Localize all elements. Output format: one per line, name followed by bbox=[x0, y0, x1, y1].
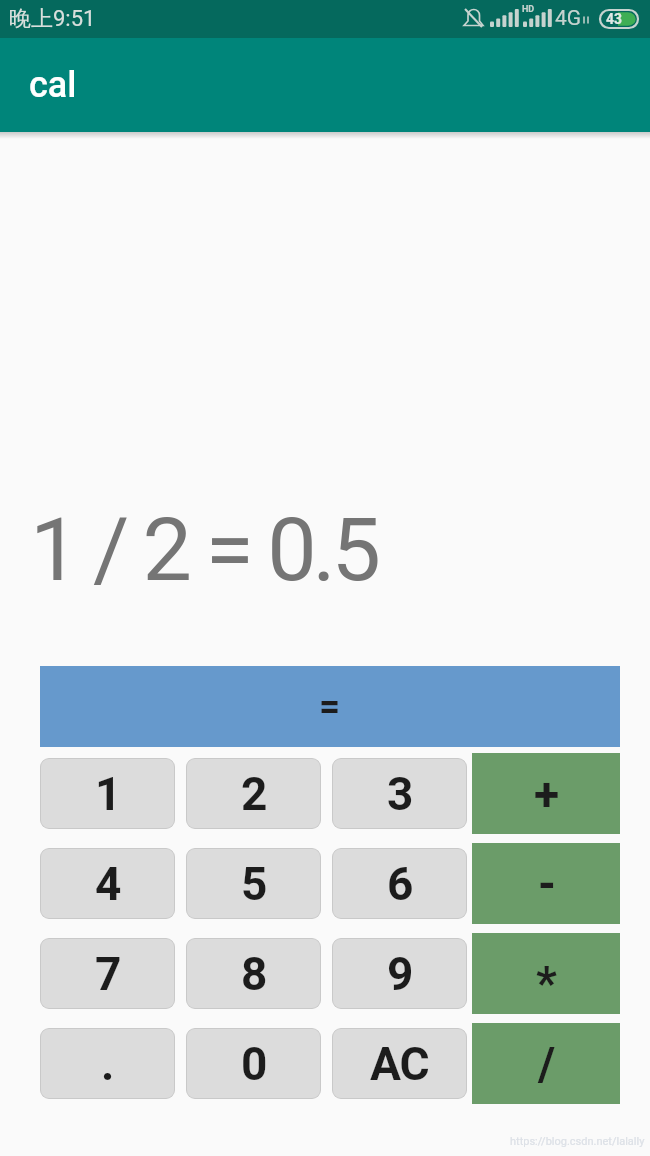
button[interactable]: + bbox=[472, 753, 620, 834]
staticText: 9 bbox=[387, 947, 413, 1001]
staticText: https://blog.csdn.net/lalally bbox=[510, 1135, 645, 1148]
staticText: 4G bbox=[555, 6, 582, 31]
staticText: = bbox=[319, 685, 341, 728]
staticText: . bbox=[101, 1037, 114, 1091]
staticText: 1 / 2 = 0.5 bbox=[30, 498, 377, 601]
staticText: cal bbox=[29, 64, 77, 106]
staticText: 43 bbox=[606, 11, 623, 27]
button[interactable]: 1 bbox=[40, 758, 175, 829]
button[interactable]: * bbox=[472, 933, 620, 1014]
staticText: 4 bbox=[95, 857, 121, 911]
button[interactable]: AC bbox=[332, 1028, 467, 1099]
staticText: 7 bbox=[95, 947, 121, 1001]
staticText: 晚上9:51 bbox=[9, 5, 96, 33]
button[interactable]: = bbox=[40, 666, 620, 747]
staticText: 0 bbox=[241, 1037, 267, 1091]
staticText: * bbox=[536, 956, 556, 1010]
staticText: 1 bbox=[95, 767, 121, 821]
button[interactable]: 9 bbox=[332, 938, 467, 1009]
staticText: HD bbox=[522, 4, 535, 15]
button[interactable]: - bbox=[472, 843, 620, 924]
staticText: 8 bbox=[241, 947, 267, 1001]
button[interactable]: / bbox=[472, 1023, 620, 1104]
staticText: 5 bbox=[241, 857, 267, 911]
staticText: 2 bbox=[241, 767, 267, 821]
button[interactable]: 3 bbox=[332, 758, 467, 829]
staticText: AC bbox=[370, 1037, 429, 1091]
button[interactable]: . bbox=[40, 1028, 175, 1099]
button[interactable]: 7 bbox=[40, 938, 175, 1009]
button[interactable]: 5 bbox=[186, 848, 321, 919]
button[interactable]: 6 bbox=[332, 848, 467, 919]
button[interactable]: 0 bbox=[186, 1028, 321, 1099]
staticText: 3 bbox=[387, 767, 413, 821]
button[interactable]: 4 bbox=[40, 848, 175, 919]
staticText: - bbox=[538, 857, 555, 911]
button[interactable]: 8 bbox=[186, 938, 321, 1009]
button[interactable]: 2 bbox=[186, 758, 321, 829]
staticText: 6 bbox=[387, 857, 413, 911]
staticText: + bbox=[534, 767, 559, 821]
staticText: / bbox=[538, 1037, 555, 1091]
